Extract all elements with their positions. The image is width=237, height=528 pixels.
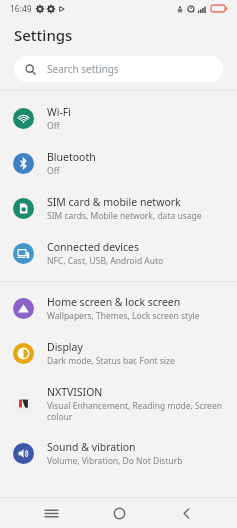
staticText: Search settings [47,62,119,76]
staticText: Display [47,340,83,354]
button[interactable]: Display [0,331,237,376]
staticText: Volume, Vibration, Do Not Disturb [47,455,183,467]
button[interactable]: Wi-Fi [0,96,237,141]
button[interactable]: Recent apps [34,498,68,528]
button[interactable]: Back [169,498,203,528]
staticText: Off [47,120,60,132]
staticText: Wallpapers, Themes, Lock screen style [47,310,200,322]
button[interactable]: Connected devices [0,231,237,276]
staticText: 16:49 [10,3,32,15]
button[interactable]: NXTVISION [0,376,237,431]
staticText: SIM cards, Mobile network, data usage [47,210,202,222]
staticText: Dark mode, Status bar, Font size [47,355,175,367]
staticText: NXTVISION [47,385,103,399]
staticText: Home screen & lock screen [47,295,181,309]
staticText: Wi-Fi [47,105,72,119]
button[interactable]: Sound & vibration [0,431,237,476]
staticText: Settings [14,25,73,45]
staticText: Off [47,165,60,177]
staticText: SIM card & mobile network [47,195,181,209]
button[interactable]: Home screen & lock screen [0,286,237,331]
button[interactable]: Bluetooth [0,141,237,186]
button[interactable]: Home [102,498,136,528]
button[interactable]: Search settings [14,56,223,82]
staticText: Bluetooth [47,150,96,164]
staticText: Visual Enhancement, Reading mode, Screen… [47,400,222,422]
staticText: Connected devices [47,240,140,254]
button[interactable]: SIM card & mobile network [0,186,237,231]
staticText: NFC, Cast, USB, Android Auto [47,255,164,267]
staticText: Sound & vibration [47,440,136,454]
